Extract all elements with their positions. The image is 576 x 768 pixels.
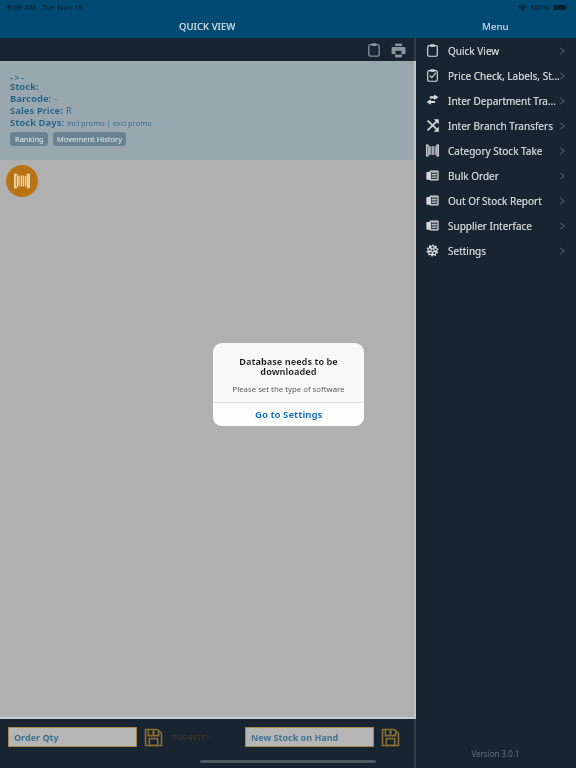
staticText: Category Stock Take	[448, 144, 560, 158]
staticText: Order Qty	[14, 731, 59, 743]
staticText: -	[54, 92, 58, 104]
staticText: Bulk Order	[448, 169, 560, 183]
staticText: 100%	[530, 2, 550, 12]
button[interactable]: Save order quantity	[143, 727, 163, 747]
staticText: Movement History	[57, 134, 123, 144]
staticText: Database needs to be downloaded	[219, 355, 358, 378]
staticText: Stock Days:	[10, 116, 67, 128]
button[interactable]: Out Of Stock Report	[415, 188, 576, 213]
button[interactable]: Notes	[363, 39, 385, 61]
button[interactable]: Movement History	[53, 132, 126, 146]
staticText: Ranking	[15, 134, 44, 144]
button[interactable]: Inter Department Trans...	[415, 88, 576, 113]
staticText: Price Check, Labels, St...	[448, 69, 560, 83]
button[interactable]: Print	[387, 39, 409, 61]
staticText: New Stock on Hand	[251, 731, 339, 743]
staticText: Supplier Interface	[448, 219, 560, 233]
button[interactable]: Bulk Order	[415, 163, 576, 188]
staticText: Inter Branch Transfers	[448, 119, 560, 133]
staticText: SUGGEST?	[172, 732, 210, 742]
button[interactable]: Order Qty	[8, 727, 137, 747]
button[interactable]: Supplier Interface	[415, 213, 576, 238]
staticText: Version 3.0.1	[415, 748, 576, 759]
button[interactable]: Settings	[415, 238, 576, 263]
button[interactable]: Save stock on hand	[380, 727, 400, 747]
staticText: Go to Settings	[255, 408, 323, 421]
staticText: Please set the type of software	[232, 384, 345, 395]
staticText: QUICK VIEW	[179, 20, 236, 33]
button[interactable]: Price Check, Labels, St...	[415, 63, 576, 88]
staticText: 9:09 AM Tue Nov 19	[7, 2, 83, 12]
staticText: R	[66, 104, 72, 116]
staticText: Stock:	[10, 80, 39, 92]
staticText: Settings	[448, 244, 560, 258]
staticText: - > -	[10, 72, 24, 80]
button[interactable]: Quick View	[415, 38, 576, 63]
button[interactable]: Category Stock Take	[415, 138, 576, 163]
button[interactable]: Go to Settings	[213, 403, 364, 426]
staticText: Barcode:	[10, 92, 54, 104]
staticText: Out Of Stock Report	[448, 194, 560, 208]
button[interactable]: New Stock on Hand	[245, 727, 374, 747]
staticText: incl promo | excl promo	[67, 118, 152, 128]
staticText: Sales Price:	[10, 104, 66, 116]
button[interactable]: Scan barcode	[6, 165, 38, 197]
staticText: Inter Department Trans...	[448, 94, 560, 108]
button[interactable]: Ranking	[10, 132, 48, 146]
staticText: Quick View	[448, 44, 560, 58]
staticText: Menu	[482, 20, 509, 33]
button[interactable]: Inter Branch Transfers	[415, 113, 576, 138]
